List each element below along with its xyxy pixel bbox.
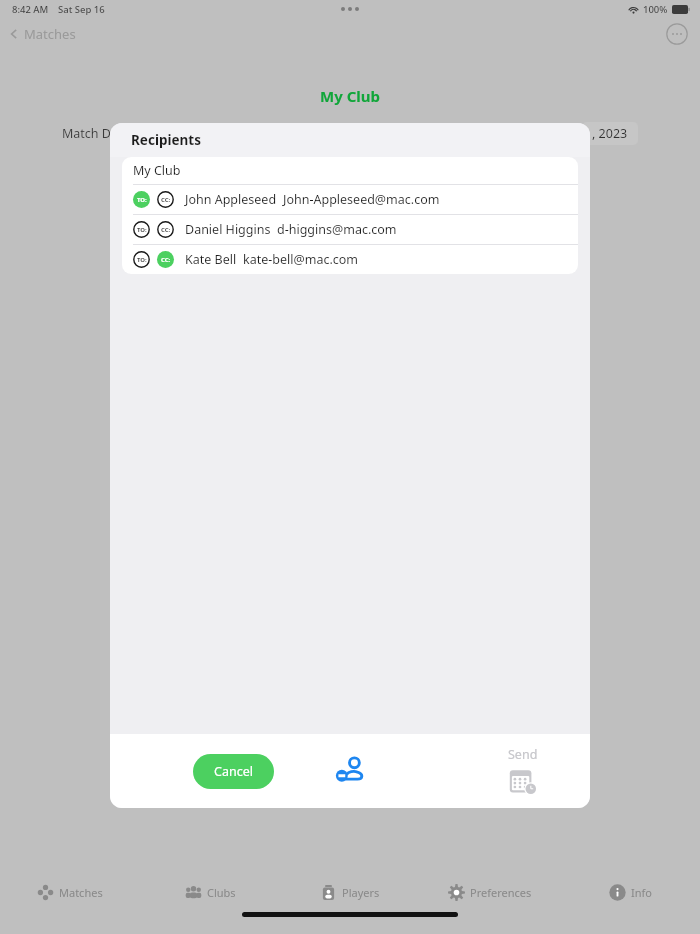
staticText: Sat Sep 16	[58, 3, 105, 16]
staticText: Info	[631, 885, 652, 900]
staticText: Kate Bell	[185, 251, 237, 268]
staticText: kate-bell@mac.com	[243, 251, 359, 268]
button[interactable]: TO:	[122, 215, 578, 244]
button[interactable]: Matches	[0, 872, 140, 912]
button[interactable]: CC:	[157, 191, 174, 208]
button[interactable]: Clubs	[140, 872, 280, 912]
button[interactable]: Remove recipient	[327, 748, 373, 794]
staticText: Matches	[24, 25, 76, 43]
staticText: Players	[342, 885, 380, 900]
staticText: My Club	[133, 162, 181, 179]
button[interactable]: TO:	[133, 191, 150, 208]
button[interactable]: TO:	[122, 185, 578, 214]
button[interactable]: TO:	[133, 251, 150, 268]
staticText: TO:	[137, 196, 147, 204]
staticText: 8:42 AM	[12, 3, 49, 16]
button[interactable]: Matches	[0, 21, 84, 47]
button[interactable]: Cancel	[193, 754, 274, 789]
staticText: Preferences	[470, 885, 532, 900]
staticText: 100%	[643, 3, 668, 16]
staticText: CC:	[161, 196, 171, 204]
button[interactable]: TO:	[122, 245, 578, 274]
button[interactable]: CC:	[157, 251, 174, 268]
staticText: TO:	[137, 256, 147, 264]
staticText: , 2023	[592, 125, 628, 142]
staticText: TO:	[137, 226, 147, 234]
staticText: Daniel Higgins	[185, 221, 271, 238]
staticText: d-higgins@mac.com	[277, 221, 397, 238]
staticText: CC:	[161, 256, 171, 264]
button[interactable]: Preferences	[420, 872, 560, 912]
button[interactable]: Info	[560, 872, 700, 912]
button[interactable]: CC:	[157, 221, 174, 238]
button[interactable]: Players	[280, 872, 420, 912]
staticText: CC:	[161, 226, 171, 234]
staticText: Recipients	[131, 131, 201, 149]
staticText: My Club	[0, 86, 700, 106]
staticText: John-Appleseed@mac.com	[283, 191, 440, 208]
staticText: Match D	[62, 125, 111, 142]
button[interactable]: TO:	[133, 221, 150, 238]
staticText: Send	[508, 746, 538, 763]
staticText: Clubs	[207, 885, 236, 900]
button[interactable]: Send	[504, 744, 542, 798]
staticText: John Appleseed	[185, 191, 277, 208]
button[interactable]: More options	[666, 23, 688, 45]
staticText: Matches	[59, 885, 103, 900]
staticText: Cancel	[214, 763, 253, 780]
